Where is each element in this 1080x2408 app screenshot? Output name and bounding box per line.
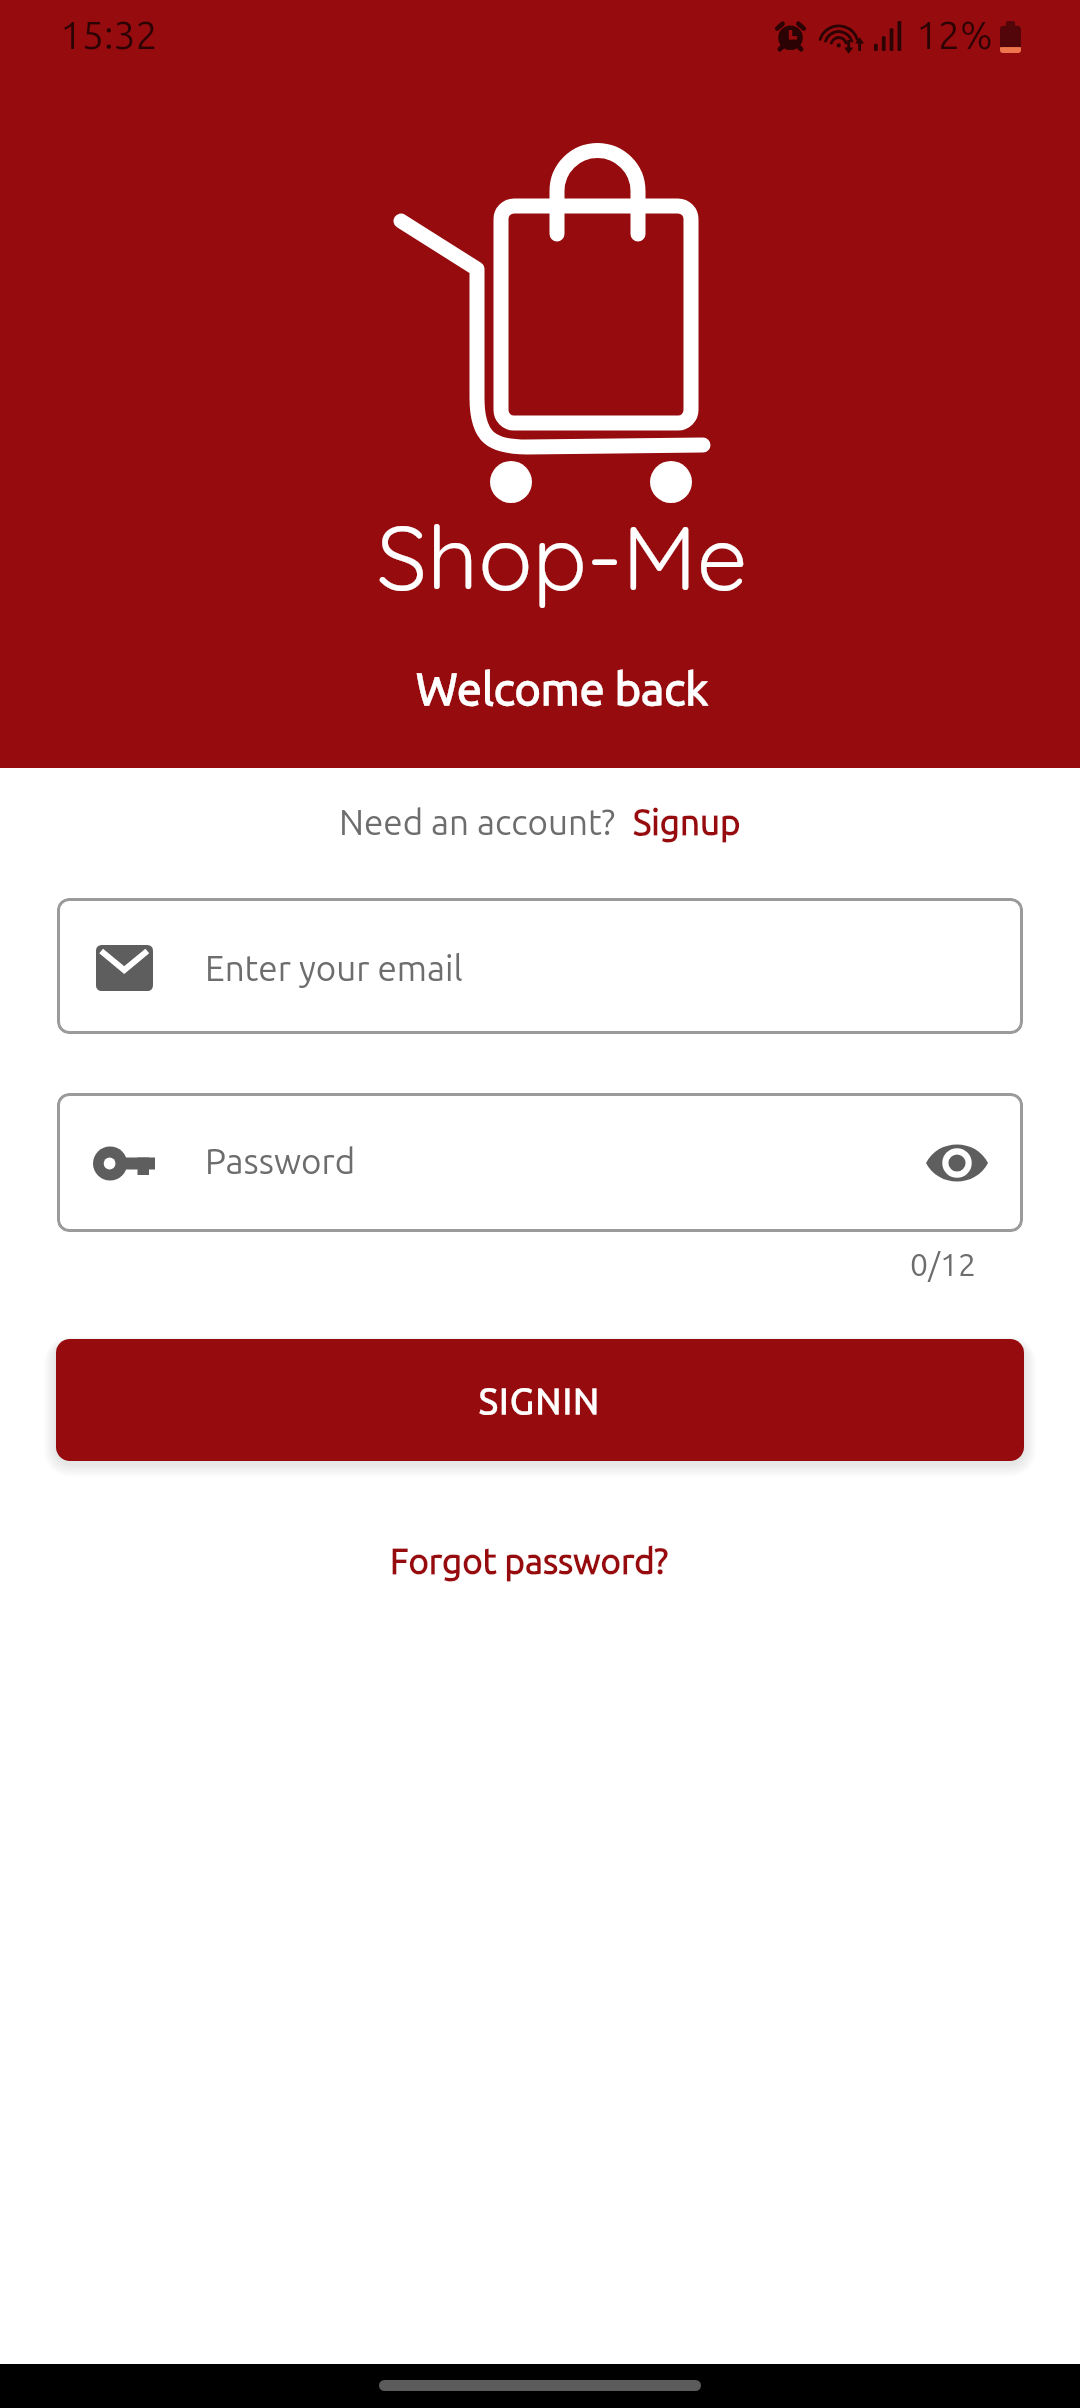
button[interactable]: Show password [901,1107,1013,1219]
staticText: Password [205,1141,356,1180]
staticText: Need an account? [339,802,616,841]
staticText: Forgot password? [390,1541,669,1580]
staticText: Enter your email [205,948,463,987]
staticText: Signup [633,802,741,841]
button[interactable]: Forgot password? [390,1541,669,1580]
button[interactable]: Enter your email [57,898,1023,1034]
button[interactable]: Signup [633,802,741,841]
staticText: SIGNIN [479,1380,601,1420]
staticText: 12% [916,13,993,57]
button[interactable]: SIGNIN [56,1339,1024,1461]
staticText: 15:32 [60,13,158,57]
staticText: Welcome back [22,663,1080,713]
staticText: 0/12 [0,1246,976,1282]
button[interactable]: Password [57,1093,1023,1232]
staticText: Shop-Me [22,500,1080,613]
